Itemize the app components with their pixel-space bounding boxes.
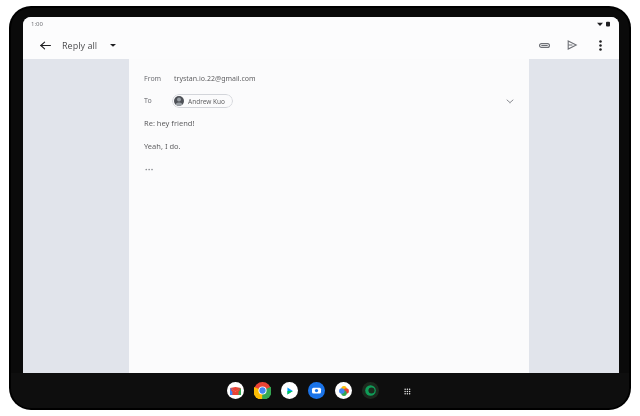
- button[interactable]: Gmail: [226, 381, 245, 400]
- button[interactable]: From: [144, 71, 517, 87]
- button[interactable]: Reply all: [60, 36, 118, 54]
- button[interactable]: Andrew Kuo: [174, 96, 226, 106]
- button[interactable]: Re: hey friend!: [144, 118, 517, 128]
- button[interactable]: Chrome: [253, 381, 272, 400]
- staticText: 1:00: [31, 20, 43, 28]
- button[interactable]: Show quoted text: [145, 164, 159, 174]
- button[interactable]: Expand recipients: [503, 94, 517, 108]
- staticText: To: [144, 96, 172, 106]
- button[interactable]: To: [144, 94, 517, 108]
- button[interactable]: Messages: [361, 381, 380, 400]
- button[interactable]: Camera: [307, 381, 326, 400]
- button[interactable]: All apps: [399, 383, 415, 399]
- staticText: Andrew Kuo: [188, 97, 226, 106]
- button[interactable]: More options: [591, 36, 609, 54]
- button[interactable]: Back: [35, 35, 55, 55]
- staticText: trystan.io.22@gmail.com: [174, 74, 256, 84]
- staticText: Reply all: [62, 39, 98, 51]
- button[interactable]: Yeah, I do.: [144, 141, 517, 151]
- button[interactable]: Send: [563, 36, 581, 54]
- staticText: From: [144, 74, 162, 84]
- button[interactable]: Photos: [334, 381, 353, 400]
- button[interactable]: Play Store: [280, 381, 299, 400]
- button[interactable]: Attach file: [535, 36, 553, 54]
